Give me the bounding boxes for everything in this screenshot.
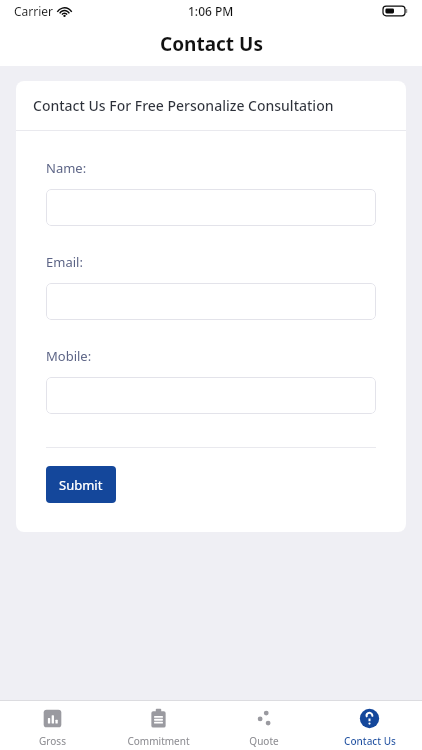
button[interactable] [46, 189, 376, 226]
staticText: Email: [46, 253, 83, 271]
other: Gross [42, 708, 63, 729]
staticText: Contact Us [160, 31, 263, 57]
staticText: 1:06 PM [188, 3, 234, 19]
other: Contact Us [359, 708, 380, 729]
staticText: Carrier [14, 3, 54, 19]
staticText: Contact Us For Free Personalize Consulta… [33, 96, 334, 115]
button[interactable] [46, 283, 376, 320]
staticText: Mobile: [46, 347, 92, 365]
staticText: Commitment [127, 734, 190, 748]
button[interactable] [46, 377, 376, 414]
staticText: Name: [46, 159, 87, 177]
button[interactable]: Submit [46, 466, 116, 503]
other: Commitment [148, 708, 169, 729]
staticText: Quote [249, 734, 279, 748]
button[interactable]: Contact Us [317, 701, 422, 750]
staticText: Gross [39, 734, 66, 748]
button[interactable]: Quote [211, 701, 316, 750]
button[interactable]: Commitment [106, 701, 211, 750]
staticText: Contact Us [344, 734, 396, 748]
staticText: Submit [59, 476, 103, 494]
button[interactable]: Gross [0, 701, 105, 750]
other: Quote [253, 708, 274, 729]
